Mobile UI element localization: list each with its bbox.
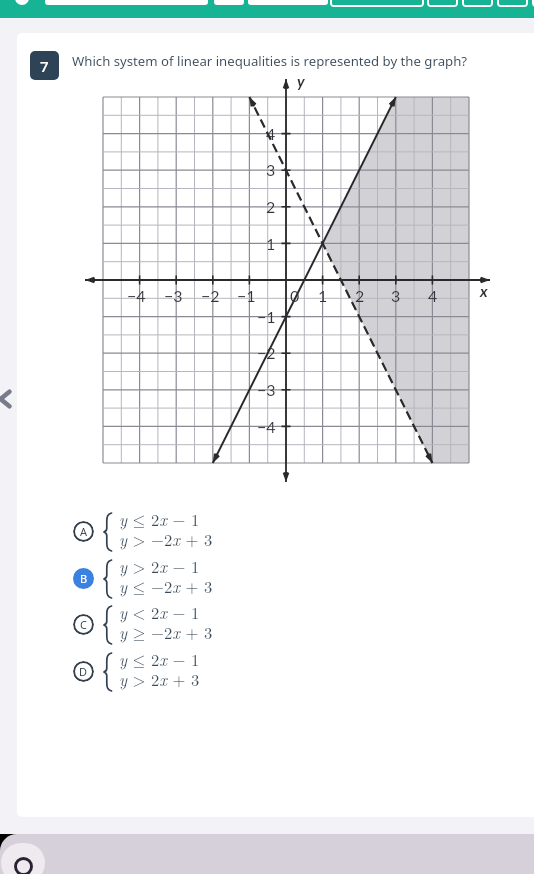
staticText: y < 2x − 1 xyxy=(119,600,200,624)
staticText: 4 xyxy=(428,286,438,305)
staticText: y ≥ −2x + 3 xyxy=(119,620,213,644)
button[interactable]: Previous xyxy=(0,386,15,412)
staticText: −1 xyxy=(257,307,276,326)
staticText: 4 xyxy=(266,124,276,143)
staticText: 7 xyxy=(40,56,49,76)
staticText: y ≤ 2x − 1 xyxy=(119,647,200,671)
staticText: −1 xyxy=(237,286,256,305)
staticText: −2 xyxy=(201,286,220,305)
button[interactable] xyxy=(248,0,328,5)
button[interactable]: Account xyxy=(15,0,29,5)
staticText: 1 xyxy=(266,234,276,253)
staticText: C xyxy=(80,617,87,632)
staticText: 2 xyxy=(266,197,276,216)
button[interactable] xyxy=(427,0,458,7)
button[interactable]: B xyxy=(67,554,387,600)
staticText: Which system of linear inequalities is r… xyxy=(72,52,468,70)
staticText: A xyxy=(80,524,88,539)
button[interactable] xyxy=(497,0,528,7)
staticText: y > 2x − 1 xyxy=(119,554,200,578)
staticText: 0 xyxy=(290,286,300,305)
staticText: x xyxy=(480,282,488,301)
staticText: y > 2x + 3 xyxy=(119,667,200,691)
staticText: 3 xyxy=(391,286,401,305)
button[interactable]: D xyxy=(67,647,387,693)
button[interactable] xyxy=(330,0,424,7)
staticText: −3 xyxy=(257,380,276,399)
staticText: 2 xyxy=(355,286,365,305)
staticText: −3 xyxy=(164,286,183,305)
button[interactable]: Home xyxy=(1,843,45,874)
staticText: D xyxy=(79,664,88,679)
button[interactable] xyxy=(532,0,534,7)
button[interactable] xyxy=(462,0,493,7)
staticText: −4 xyxy=(257,417,276,436)
staticText: 1 xyxy=(318,286,328,305)
staticText: 3 xyxy=(266,160,276,179)
staticText: y ≤ −2x + 3 xyxy=(119,574,213,598)
button[interactable]: A xyxy=(67,507,387,553)
button[interactable] xyxy=(45,0,208,5)
staticText: −2 xyxy=(257,343,276,362)
staticText: y > −2x + 3 xyxy=(119,527,213,551)
button[interactable] xyxy=(214,0,244,5)
staticText: B xyxy=(80,571,88,586)
staticText: y xyxy=(297,72,305,91)
staticText: y ≤ 2x − 1 xyxy=(119,507,200,531)
button[interactable]: C xyxy=(67,600,387,646)
staticText: −4 xyxy=(127,286,146,305)
